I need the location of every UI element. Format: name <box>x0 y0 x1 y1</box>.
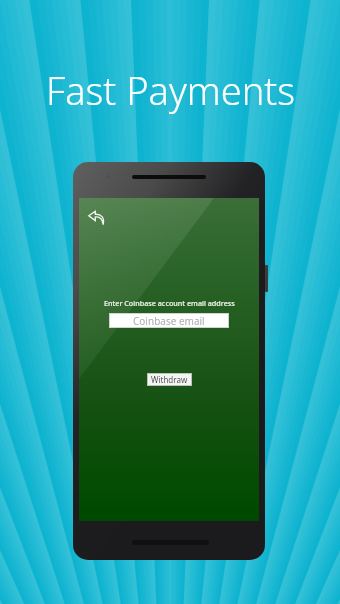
staticText: Enter Coinbase account email address <box>104 298 235 308</box>
staticText: Coinbase email <box>133 314 205 328</box>
staticText: Withdraw <box>151 374 188 385</box>
staticText: Fast Payments <box>46 64 295 116</box>
button[interactable]: Back <box>87 208 105 226</box>
button[interactable]: Coinbase email <box>109 313 229 328</box>
button[interactable]: Withdraw <box>147 373 192 386</box>
